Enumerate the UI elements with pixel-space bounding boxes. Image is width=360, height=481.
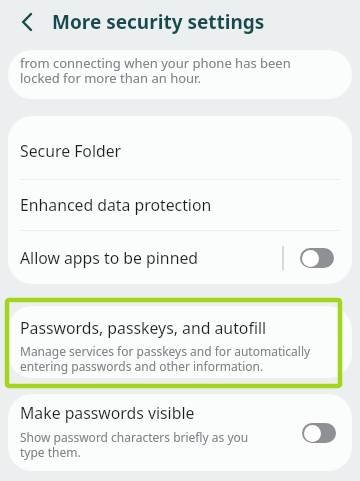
button[interactable]: Secure Folder [8,116,352,179]
staticText: Enhanced data protection [20,194,212,216]
button[interactable] [302,423,336,443]
button[interactable] [13,8,41,36]
staticText: Manage services for passkeys and for aut… [20,343,311,374]
button[interactable] [300,248,334,268]
staticText: from connecting when your phone has been… [20,54,291,87]
button[interactable]: Allow apps to be pinned [8,231,352,284]
staticText: Allow apps to be pinned [20,247,199,269]
staticText: Secure Folder [20,140,122,162]
button[interactable]: Passwords, passkeys, and autofill [8,306,352,378]
staticText: Show password characters briefly as you … [20,429,249,460]
button[interactable]: Make passwords visible [8,394,352,471]
button[interactable]: Enhanced data protection [8,180,352,230]
staticText: More security settings [52,9,265,35]
staticText: Passwords, passkeys, and autofill [20,317,267,339]
staticText: Make passwords visible [20,402,195,424]
